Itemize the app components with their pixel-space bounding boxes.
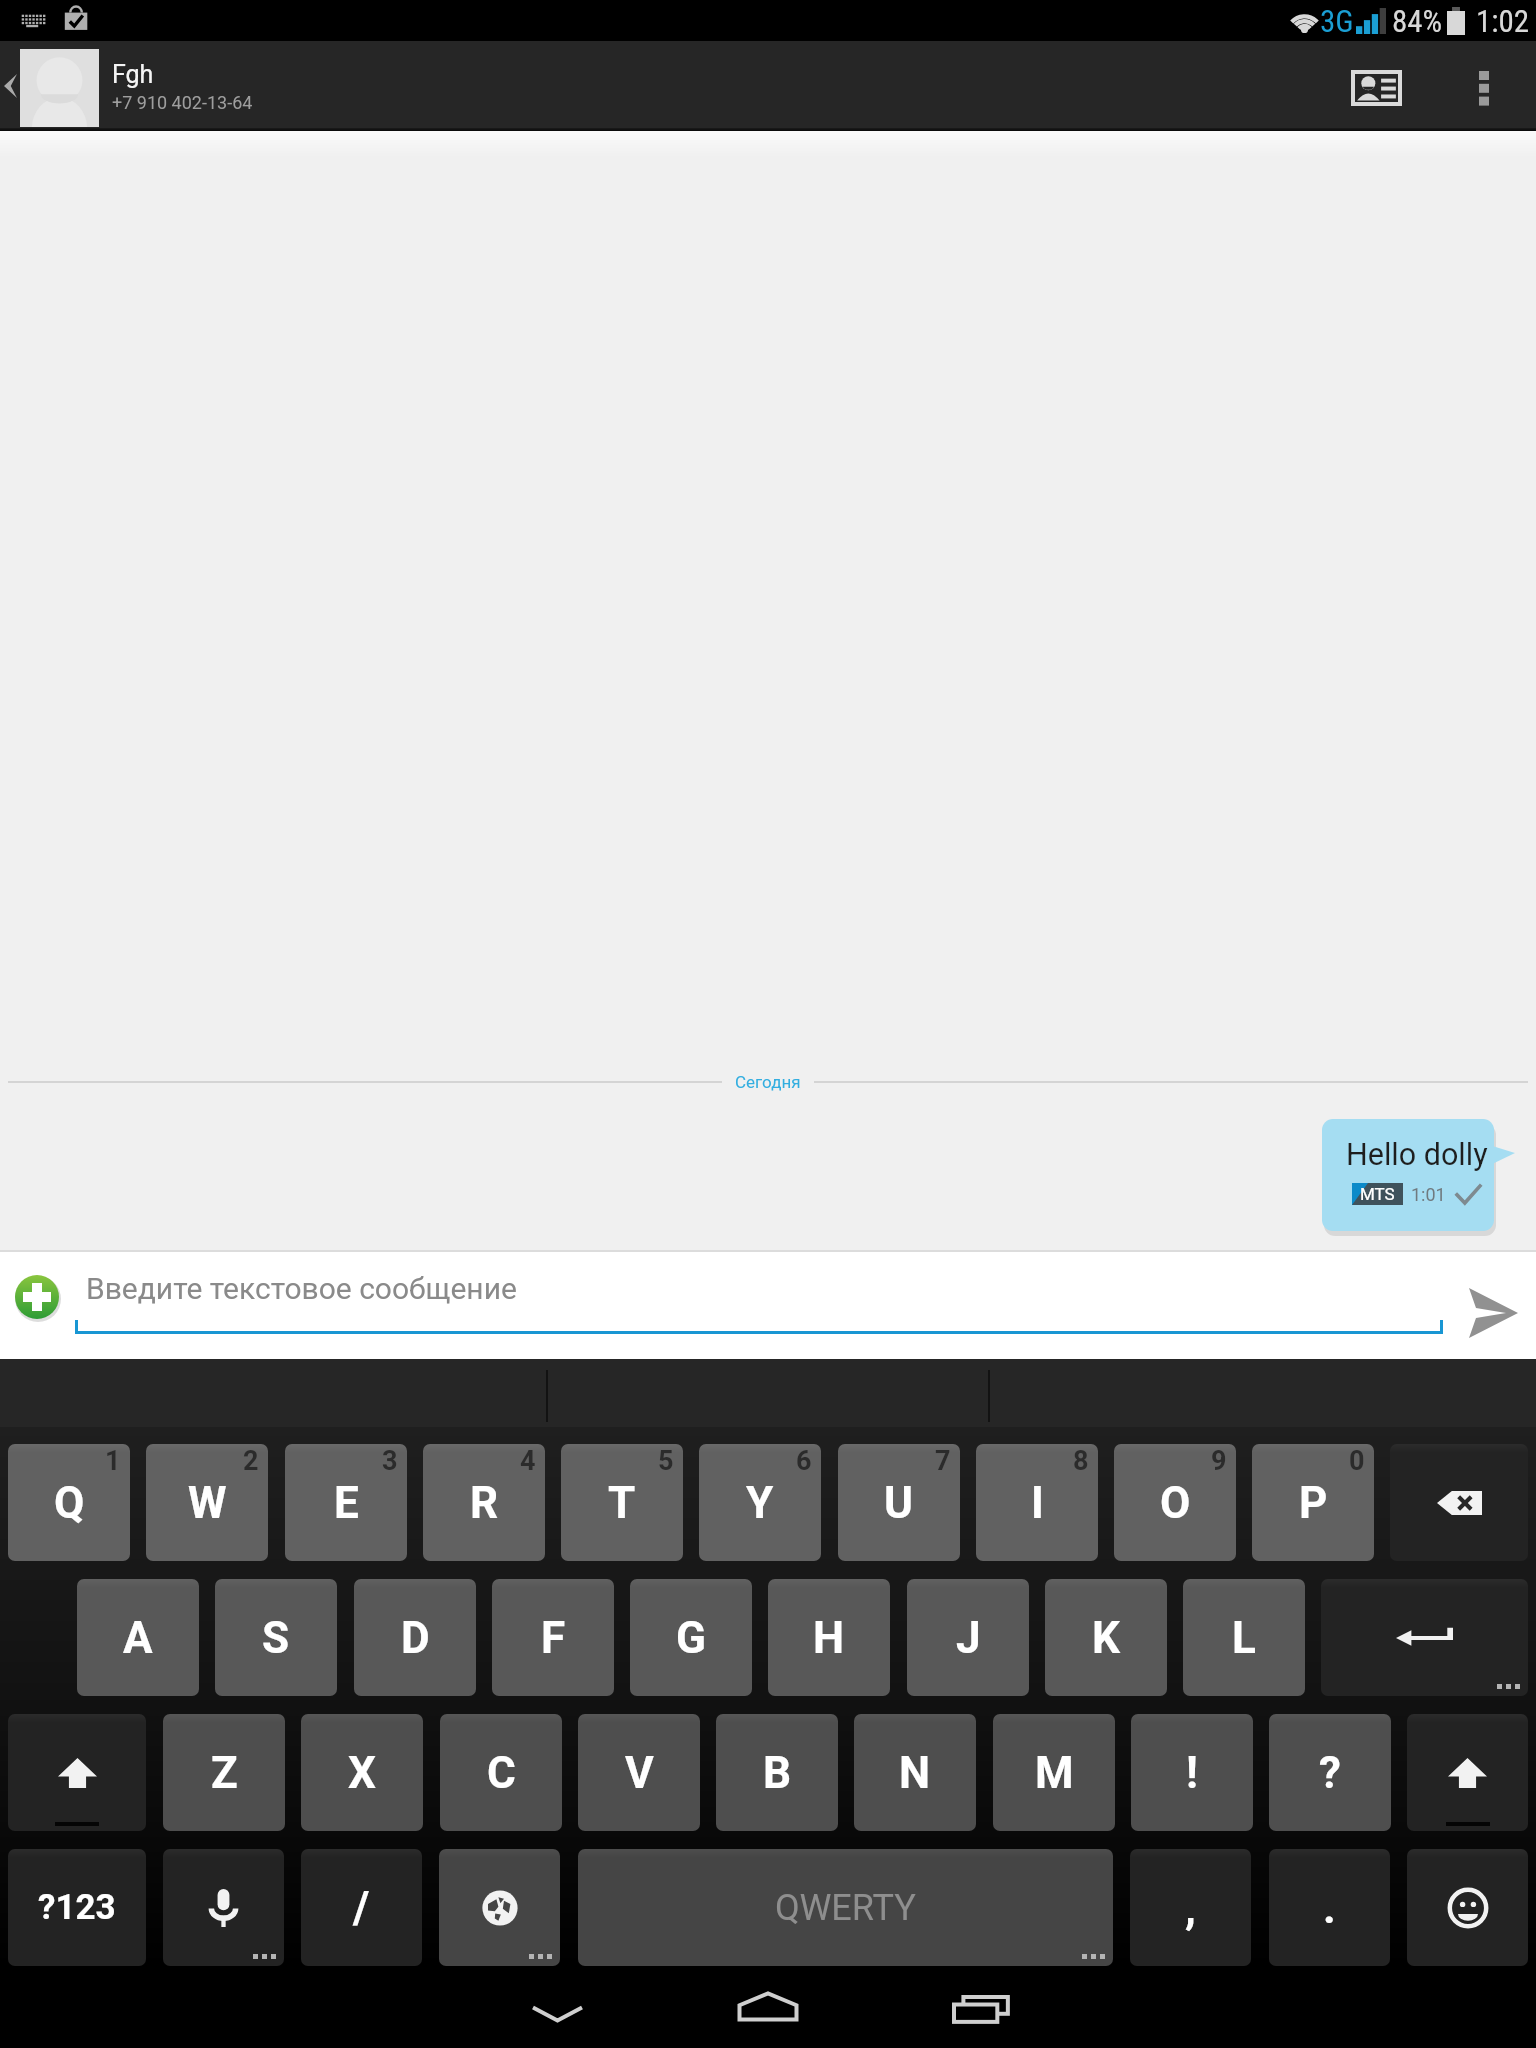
- staticText: J: [956, 1612, 981, 1664]
- staticText: V: [625, 1747, 654, 1799]
- staticText: /: [353, 1882, 370, 1934]
- button[interactable]: G: [630, 1579, 752, 1696]
- button[interactable]: Emoji: [1407, 1849, 1528, 1966]
- button[interactable]: Shift: [1407, 1714, 1528, 1831]
- staticText: X: [348, 1747, 376, 1799]
- button[interactable]: ,: [1130, 1849, 1251, 1966]
- button[interactable]: Hide keyboard: [452, 1966, 662, 2048]
- staticText: W: [188, 1477, 227, 1529]
- staticText: K: [1092, 1612, 1120, 1664]
- button[interactable]: Shift: [8, 1714, 146, 1831]
- button[interactable]: /: [301, 1849, 422, 1966]
- staticText: 7: [935, 1445, 951, 1477]
- button[interactable]: Home: [663, 1966, 873, 2048]
- staticText: 0: [1349, 1445, 1365, 1477]
- staticText: O: [1160, 1477, 1191, 1529]
- staticText: S: [262, 1612, 290, 1664]
- button[interactable]: Voice input: [163, 1849, 284, 1966]
- button[interactable]: N: [854, 1714, 976, 1831]
- button[interactable]: B: [716, 1714, 838, 1831]
- staticText: QWERTY: [775, 1887, 916, 1929]
- staticText: 2: [243, 1445, 259, 1477]
- staticText: M: [1035, 1747, 1074, 1799]
- button[interactable]: More options: [1432, 41, 1536, 131]
- button[interactable]: D: [354, 1579, 476, 1696]
- staticText: 9: [1211, 1445, 1227, 1477]
- button[interactable]: Send: [1444, 1250, 1536, 1359]
- staticText: 6: [796, 1445, 812, 1477]
- button[interactable]: Add attachment: [14, 1274, 60, 1320]
- button[interactable]: .: [1269, 1849, 1390, 1966]
- staticText: 4: [520, 1445, 536, 1477]
- button[interactable]: !: [1131, 1714, 1253, 1831]
- staticText: Y: [746, 1477, 774, 1529]
- button[interactable]: O: [1114, 1444, 1236, 1561]
- button[interactable]: ?: [1269, 1714, 1391, 1831]
- staticText: E: [334, 1477, 359, 1529]
- button[interactable]: R: [423, 1444, 545, 1561]
- button[interactable]: E: [285, 1444, 407, 1561]
- staticText: I: [1031, 1477, 1044, 1529]
- staticText: ?: [1319, 1747, 1341, 1799]
- staticText: 84%: [1392, 3, 1443, 39]
- button[interactable]: Contact details: [1320, 41, 1432, 131]
- staticText: Z: [211, 1747, 238, 1799]
- staticText: L: [1232, 1612, 1256, 1664]
- staticText: B: [763, 1747, 792, 1799]
- button[interactable]: W: [146, 1444, 268, 1561]
- staticText: 1:02: [1476, 3, 1530, 39]
- staticText: Q: [54, 1477, 85, 1529]
- button[interactable]: J: [907, 1579, 1029, 1696]
- staticText: 1: [105, 1445, 121, 1477]
- button[interactable]: Q: [8, 1444, 130, 1561]
- button[interactable]: Hello dolly: [1322, 1119, 1518, 1237]
- staticText: ?123: [38, 1887, 116, 1928]
- staticText: Fgh: [112, 60, 154, 89]
- button[interactable]: S: [215, 1579, 337, 1696]
- button[interactable]: QWERTY: [578, 1849, 1113, 1966]
- staticText: .: [1323, 1882, 1336, 1934]
- staticText: 3G: [1320, 3, 1354, 39]
- button[interactable]: H: [768, 1579, 890, 1696]
- button[interactable]: Enter: [1321, 1579, 1528, 1696]
- button[interactable]: F: [492, 1579, 614, 1696]
- staticText: U: [884, 1477, 914, 1529]
- staticText: D: [401, 1612, 430, 1664]
- button[interactable]: U: [838, 1444, 960, 1561]
- staticText: 3: [382, 1445, 398, 1477]
- button[interactable]: Recent apps: [873, 1966, 1083, 2048]
- button[interactable]: Change language: [439, 1849, 560, 1966]
- staticText: F: [541, 1612, 566, 1664]
- button[interactable]: X: [301, 1714, 423, 1831]
- button[interactable]: Z: [163, 1714, 285, 1831]
- button[interactable]: C: [440, 1714, 562, 1831]
- button[interactable]: T: [561, 1444, 683, 1561]
- button[interactable]: Back: [0, 41, 20, 131]
- button[interactable]: A: [77, 1579, 199, 1696]
- button[interactable]: Backspace: [1390, 1444, 1528, 1561]
- button[interactable]: L: [1183, 1579, 1305, 1696]
- staticText: Сегодня: [735, 1072, 801, 1092]
- staticText: T: [608, 1477, 636, 1529]
- staticText: 1:01: [1411, 1184, 1446, 1205]
- staticText: ,: [1185, 1882, 1196, 1934]
- staticText: Hello dolly: [1346, 1137, 1488, 1173]
- button[interactable]: ?123: [8, 1849, 146, 1966]
- button[interactable]: P: [1252, 1444, 1374, 1561]
- staticText: MTS: [1360, 1184, 1395, 1204]
- button[interactable]: M: [993, 1714, 1115, 1831]
- button[interactable]: V: [578, 1714, 700, 1831]
- staticText: C: [487, 1747, 516, 1799]
- button[interactable]: I: [976, 1444, 1098, 1561]
- staticText: H: [813, 1612, 845, 1664]
- staticText: +7 910 402-13-64: [112, 92, 253, 113]
- staticText: A: [123, 1612, 153, 1664]
- staticText: G: [676, 1612, 706, 1664]
- staticText: !: [1186, 1747, 1198, 1799]
- button[interactable]: Введите текстовое сообщение: [75, 1250, 1443, 1359]
- button[interactable]: Y: [699, 1444, 821, 1561]
- button[interactable]: K: [1045, 1579, 1167, 1696]
